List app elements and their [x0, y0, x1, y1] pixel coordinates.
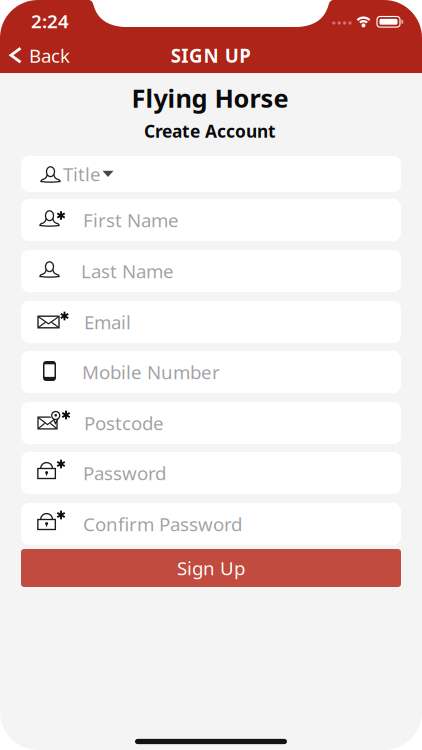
staticText: First Name [83, 208, 179, 232]
button[interactable]: Confirm Password [21, 503, 401, 545]
staticText: Postcode [84, 411, 164, 435]
button[interactable]: Title [21, 156, 401, 192]
button[interactable]: Mobile Number [21, 351, 401, 393]
staticText: Title [63, 162, 101, 186]
button[interactable]: Email [21, 301, 401, 343]
button[interactable]: Postcode [21, 402, 401, 444]
staticText: Confirm Password [83, 512, 242, 536]
button[interactable]: Last Name [21, 250, 401, 292]
staticText: Create Account [144, 119, 276, 142]
staticText: Sign Up [177, 556, 245, 580]
staticText: Back [29, 43, 70, 68]
staticText: Flying Horse [131, 81, 288, 115]
button[interactable]: Password [21, 452, 401, 494]
staticText: SIGN UP [171, 43, 251, 68]
staticText: Password [83, 461, 166, 485]
button[interactable]: First Name [21, 199, 401, 241]
staticText: Last Name [81, 259, 174, 283]
staticText: 2:24 [31, 9, 69, 33]
staticText: Mobile Number [82, 360, 220, 384]
staticText: Email [84, 310, 131, 334]
button[interactable]: Back [0, 40, 76, 70]
button[interactable]: Sign Up [21, 549, 401, 587]
